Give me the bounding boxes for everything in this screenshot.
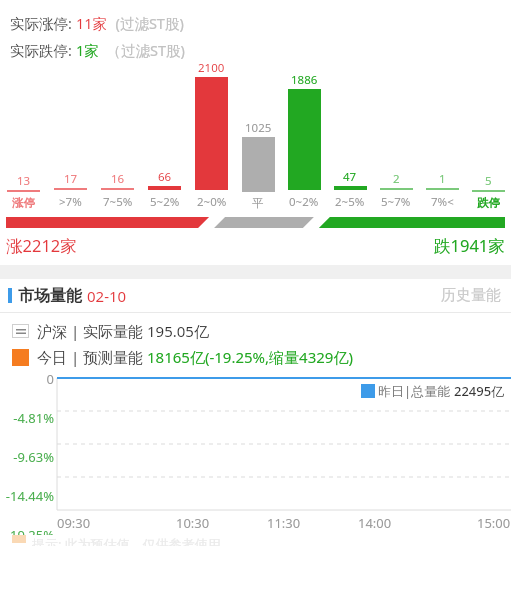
button[interactable]: 47 (327, 60, 373, 210)
button[interactable]: 1886 (281, 60, 327, 210)
staticText: 11家 (76, 13, 108, 33)
staticText: 5~2% (150, 194, 180, 210)
staticText: 09:30 (57, 514, 91, 532)
staticText: 0 (0, 370, 54, 388)
staticText: 涨停 (12, 196, 35, 210)
staticText: 17 (64, 171, 78, 187)
button[interactable]: 市场量能 (0, 279, 511, 312)
staticText: 13 (17, 173, 31, 189)
staticText: -9.63% (0, 448, 54, 466)
staticText: 今日 | 预测量能 (37, 347, 147, 367)
staticText: 2~0% (197, 194, 227, 210)
staticText: 跌1941家 (434, 234, 505, 257)
staticText: 2~5% (335, 194, 365, 210)
staticText: （过滤ST股) (99, 40, 185, 60)
other: 沪深 (12, 324, 29, 338)
staticText: 02-10 (87, 286, 127, 306)
button[interactable]: 13 (0, 60, 47, 210)
staticText: 5 (485, 173, 492, 189)
staticText: 195.05亿 (147, 321, 209, 341)
staticText: 2100 (198, 60, 225, 76)
staticText: 1 (439, 171, 446, 187)
staticText: (过滤ST股) (108, 13, 184, 33)
staticText: 实际跌停: (10, 40, 76, 60)
staticText: 平 (252, 196, 264, 210)
staticText: 14:00 (358, 514, 392, 532)
staticText: 10:30 (176, 514, 210, 532)
button[interactable]: 1025 (235, 60, 281, 210)
staticText: 15:00 (477, 514, 511, 532)
staticText: 1886 (291, 72, 318, 88)
staticText: -19.25% (0, 526, 54, 535)
button[interactable]: 2 (373, 60, 419, 210)
staticText: 16 (111, 171, 125, 187)
staticText: 沪深 | 实际量能 (37, 321, 147, 341)
staticText: 0~2% (289, 194, 319, 210)
staticText: 18165亿(-19.25%,缩量4329亿) (147, 347, 353, 367)
staticText: 7%< (431, 194, 454, 210)
staticText: 涨2212家 (6, 234, 77, 257)
staticText: 实际涨停: (10, 13, 76, 33)
button[interactable]: 66 (141, 60, 188, 210)
button[interactable]: 17 (47, 60, 94, 210)
staticText: 5~7% (381, 194, 411, 210)
staticText: 提示: 此为预估值，仅供参考使用 (32, 535, 221, 546)
staticText: 66 (158, 169, 172, 185)
staticText: >7% (59, 194, 82, 210)
button[interactable]: 1 (419, 60, 465, 210)
staticText: 1025 (245, 120, 272, 136)
staticText: 11:30 (267, 514, 301, 532)
staticText: 22495亿 (454, 382, 505, 400)
staticText: 市场量能 (18, 286, 82, 306)
staticText: 47 (343, 169, 357, 185)
staticText: -4.81% (0, 409, 54, 427)
staticText: 跌停 (477, 196, 500, 210)
button[interactable]: 2100 (188, 60, 235, 210)
button[interactable]: 5 (465, 60, 511, 210)
staticText: 昨日|总量能 (378, 382, 454, 400)
staticText: 7~5% (103, 194, 133, 210)
staticText: 2 (393, 171, 400, 187)
staticText: -14.44% (0, 487, 54, 505)
staticText: 历史量能 (441, 286, 501, 305)
staticText: 1家 (76, 40, 99, 60)
button[interactable]: 16 (94, 60, 141, 210)
